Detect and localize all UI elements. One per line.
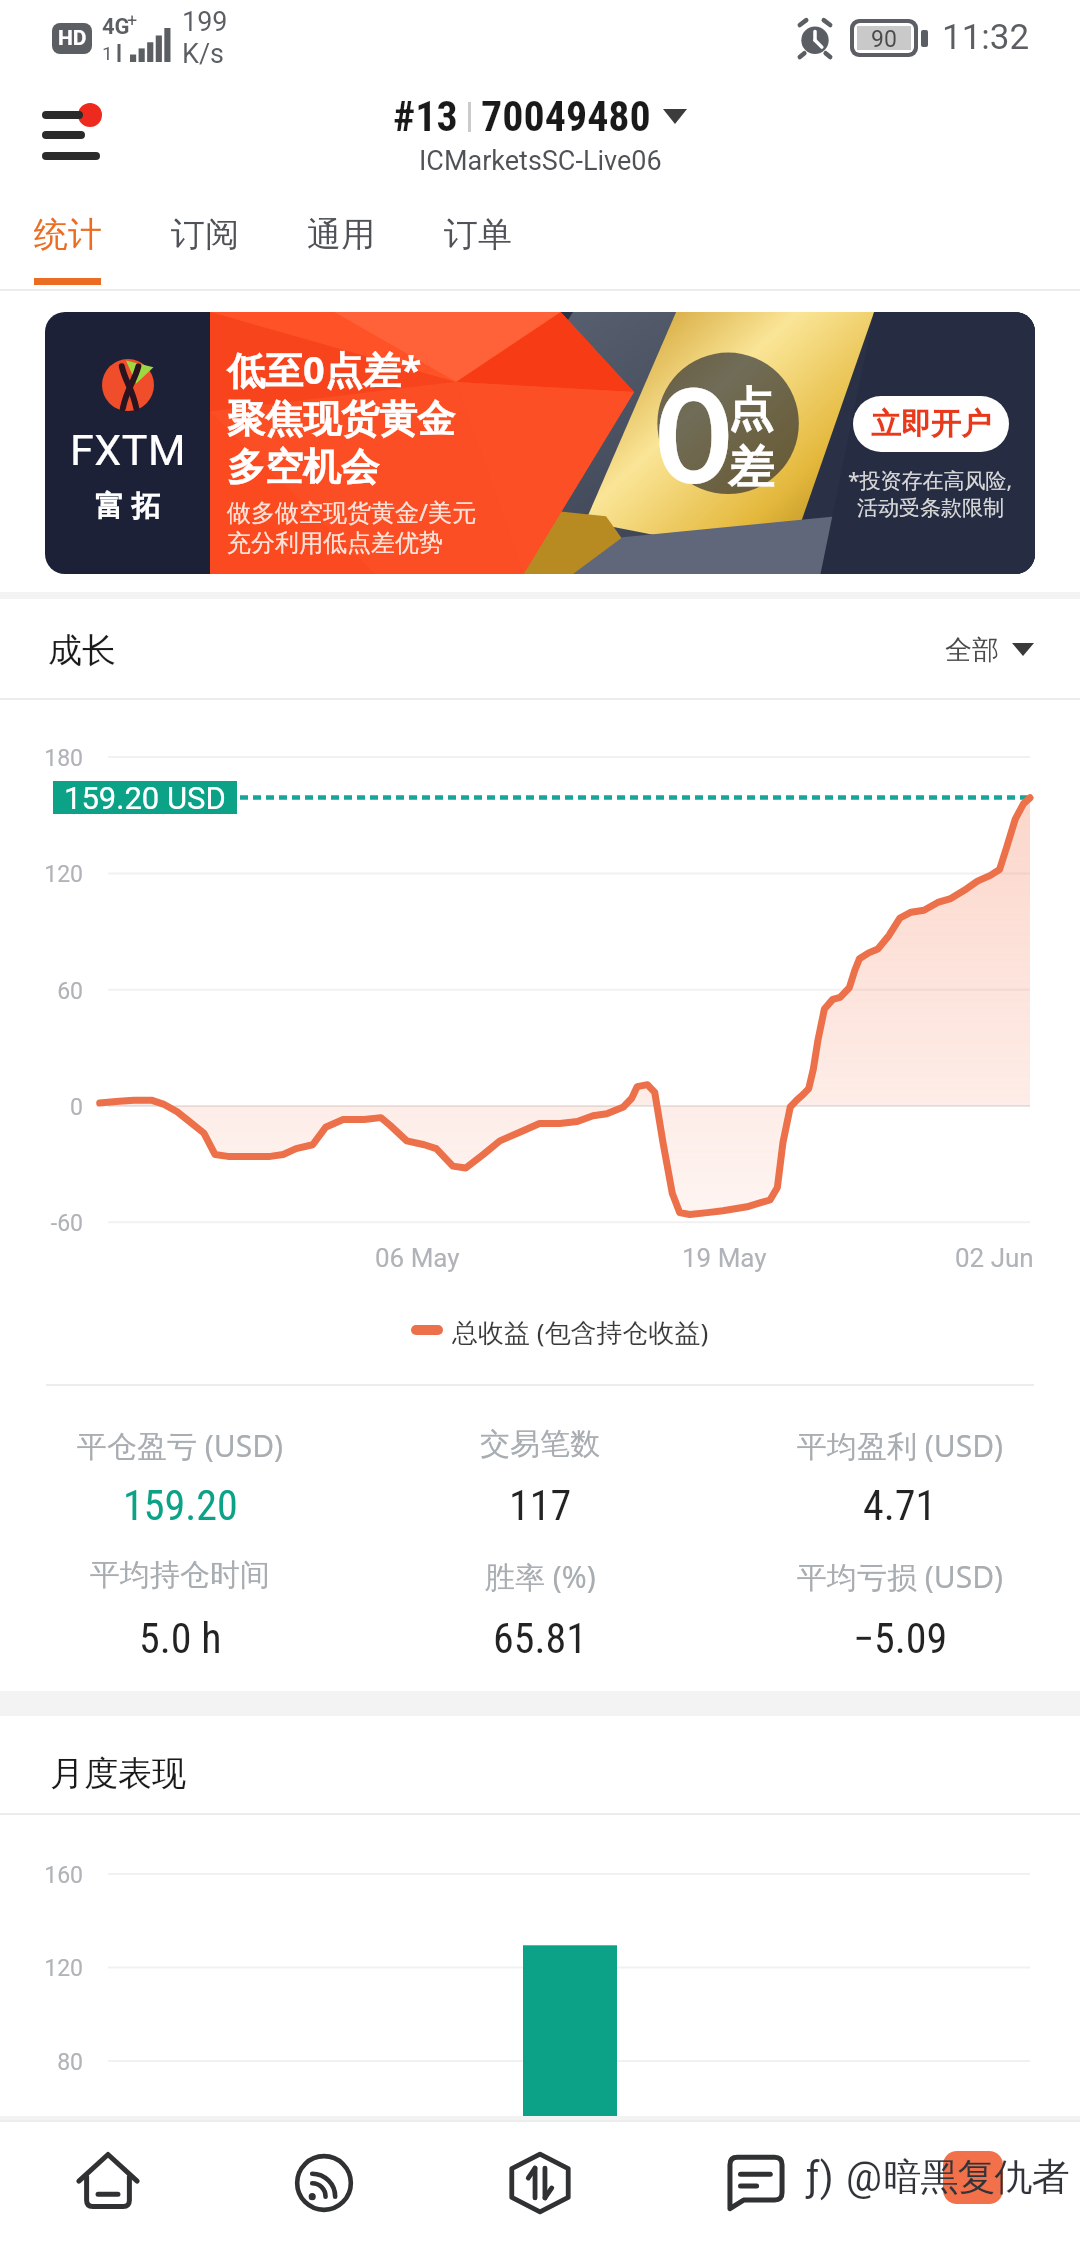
staticText: 4G <box>102 14 130 40</box>
staticText: 02 Jun <box>955 1243 1034 1273</box>
staticText: 60 <box>30 978 83 1005</box>
staticText: 月度表现 <box>50 1752 186 1795</box>
staticText: 平均盈利 (USD) <box>797 1425 1004 1466</box>
button[interactable]: 统计 <box>10 196 126 291</box>
staticText: 4.71 <box>863 1481 937 1530</box>
staticText: #13 <box>393 92 458 141</box>
button[interactable]: 通用 <box>283 196 399 291</box>
staticText: 成长 <box>48 629 116 672</box>
staticText: 70049480 <box>481 92 651 141</box>
staticText: 订单 <box>444 213 512 256</box>
staticText: 199 <box>182 6 228 38</box>
staticText: 117 <box>509 1481 572 1530</box>
staticText: @ <box>846 2154 882 2201</box>
staticText: 19 May <box>682 1243 767 1273</box>
staticText: ICMarketsSC-Live06 <box>419 145 662 177</box>
staticText: 通用 <box>307 213 375 256</box>
staticText: + <box>127 10 138 31</box>
button[interactable]: 立即开户 <box>853 396 1009 452</box>
staticText: 低至0点差* <box>227 343 422 395</box>
staticText: 160 <box>30 1862 83 1889</box>
button[interactable]: Quotes <box>216 2120 432 2244</box>
staticText: 立即开户 <box>871 405 991 443</box>
staticText: 活动受条款限制 <box>857 495 1004 521</box>
staticText: HD <box>58 26 87 51</box>
staticText: 交易笔数 <box>480 1425 600 1463</box>
staticText: 全部 <box>945 633 999 667</box>
staticText: 暗黑复仇者 <box>884 2153 1069 2201</box>
staticText: K/s <box>182 38 225 70</box>
staticText: 订阅 <box>171 213 239 256</box>
staticText: 120 <box>30 1955 83 1982</box>
button[interactable]: Menu <box>22 79 132 189</box>
staticText: 180 <box>30 745 83 772</box>
staticText: 统计 <box>34 213 102 256</box>
button[interactable]: 订阅 <box>147 196 263 291</box>
staticText: ƒ) <box>806 2154 834 2201</box>
staticText: 平均持仓时间 <box>90 1556 270 1594</box>
staticText: FXTM <box>70 425 186 475</box>
staticText: *投资存在高风险, <box>848 466 1013 495</box>
staticText: −5.09 <box>853 1614 948 1663</box>
staticText: 0 <box>30 1094 83 1121</box>
button[interactable]: Chat <box>648 2120 864 2244</box>
staticText: 做多做空现货黄金/美元 <box>227 495 476 528</box>
staticText: 80 <box>30 2049 83 2076</box>
staticText: 多空机会 <box>227 443 379 491</box>
staticText: 90 <box>871 26 897 50</box>
staticText: 06 May <box>375 1243 460 1273</box>
staticText: -60 <box>30 1210 83 1237</box>
staticText: 平仓盈亏 (USD) <box>77 1425 284 1466</box>
staticText: 聚焦现货黄金 <box>227 395 455 443</box>
staticText: 65.81 <box>493 1614 588 1663</box>
button[interactable]: 全部 <box>945 632 1034 666</box>
staticText: 富 拓 <box>95 485 161 525</box>
staticText: 充分利用低点差优势 <box>227 528 443 558</box>
staticText: 159.20 USD <box>64 780 226 813</box>
staticText: 1 <box>102 42 113 64</box>
staticText: 0 <box>656 355 732 511</box>
button[interactable]: 订单 <box>420 196 536 291</box>
staticText: 159.20 <box>123 1481 238 1530</box>
staticText: 总收益 (包含持仓收益) <box>452 1314 709 1350</box>
staticText: 5.0 h <box>139 1614 222 1663</box>
button[interactable]: Trade <box>432 2120 648 2244</box>
staticText: 120 <box>30 861 83 888</box>
staticText: 点 <box>728 381 774 439</box>
staticText: 11:32 <box>942 17 1030 58</box>
staticText: 胜率 (%) <box>485 1556 596 1597</box>
staticText: 差 <box>728 439 774 497</box>
button[interactable]: FXTM <box>45 312 1035 574</box>
button[interactable]: Home <box>0 2120 216 2244</box>
staticText: 平均亏损 (USD) <box>797 1556 1004 1597</box>
